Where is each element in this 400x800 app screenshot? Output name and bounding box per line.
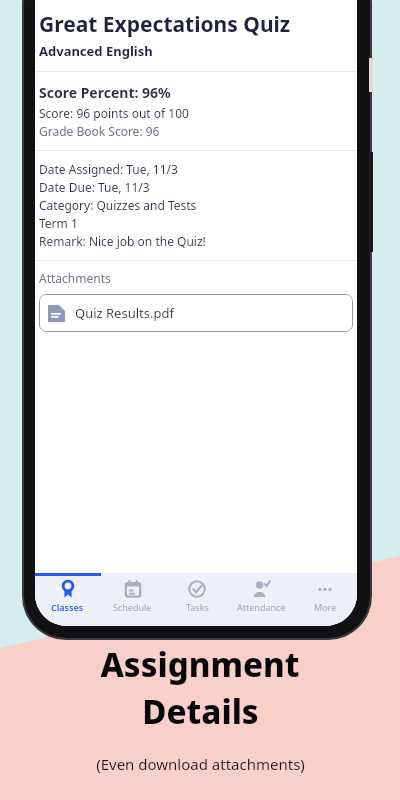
- staticText: Category: Quizzes and Tests: [39, 197, 197, 213]
- button[interactable]: Tasks: [165, 580, 229, 626]
- staticText: Remark: Nice job on the Quiz!: [39, 233, 206, 249]
- staticText: Date Assigned: Tue, 11/3: [39, 161, 178, 177]
- staticText: Tasks: [186, 601, 209, 613]
- staticText: Assignment: [100, 642, 300, 687]
- staticText: Score: 96 points out of 100: [39, 105, 189, 121]
- staticText: Schedule: [113, 601, 152, 613]
- other: Classes: [59, 580, 77, 598]
- button[interactable]: Attendance: [229, 580, 293, 626]
- staticText: Advanced English: [39, 42, 153, 60]
- staticText: More: [314, 601, 337, 613]
- staticText: Date Due: Tue, 11/3: [39, 179, 150, 195]
- other: Schedule: [124, 580, 142, 598]
- other: More: [316, 580, 334, 598]
- staticText: Great Expectations Quiz: [39, 10, 291, 39]
- staticText: Attendance: [237, 601, 286, 613]
- button[interactable]: Quiz Results.pdf: [39, 294, 353, 332]
- button[interactable]: Schedule: [100, 580, 165, 626]
- staticText: Quiz Results.pdf: [75, 304, 174, 322]
- other: Tasks: [188, 580, 206, 598]
- staticText: Score Percent: 96%: [39, 83, 171, 102]
- other: Attendance: [252, 580, 270, 598]
- staticText: Grade Book Score: 96: [39, 123, 160, 139]
- button[interactable]: More: [293, 580, 357, 626]
- staticText: Term 1: [39, 215, 78, 231]
- staticText: Attachments: [39, 270, 111, 286]
- staticText: Details: [142, 689, 259, 734]
- staticText: (Even download attachments): [96, 754, 305, 774]
- button[interactable]: Classes: [35, 580, 100, 626]
- staticText: Classes: [51, 601, 84, 613]
